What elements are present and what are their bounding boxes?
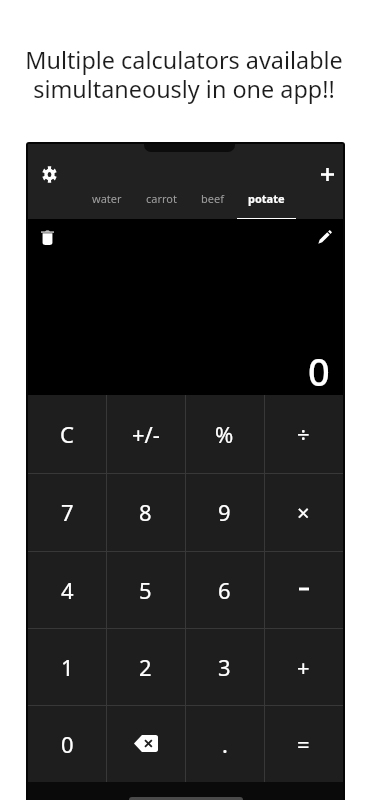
button[interactable]: beef [190, 191, 235, 220]
staticText: × [297, 497, 310, 527]
staticText: 7 [61, 497, 74, 527]
staticText: 8 [139, 497, 152, 527]
button[interactable]: Settings [37, 162, 61, 186]
staticText: 1 [61, 652, 74, 682]
button[interactable]: water [81, 191, 133, 220]
button[interactable]: 0 [28, 705, 106, 782]
button[interactable]: ÷ [264, 395, 343, 473]
button[interactable]: 5 [106, 551, 185, 628]
button[interactable]: 9 [185, 473, 264, 551]
button[interactable]: Edit [313, 225, 337, 249]
button[interactable] [264, 551, 343, 628]
staticText: water [92, 191, 122, 206]
staticText: 3 [218, 652, 231, 682]
button[interactable]: 2 [106, 628, 185, 705]
button[interactable]: C [28, 395, 106, 473]
button[interactable]: + [264, 628, 343, 705]
button[interactable]: New calculator [315, 162, 339, 186]
staticText: ÷ [297, 419, 310, 449]
button[interactable] [106, 705, 185, 782]
staticText: 6 [218, 575, 231, 605]
staticText: potate [248, 191, 285, 206]
staticText: + [297, 652, 310, 682]
button[interactable]: 6 [185, 551, 264, 628]
staticText: % [215, 419, 234, 449]
staticText: C [60, 419, 74, 449]
button[interactable]: potate [237, 191, 296, 220]
staticText: 2 [139, 652, 152, 682]
staticText: Multiple calculators available simultane… [25, 44, 343, 105]
button[interactable]: × [264, 473, 343, 551]
button[interactable]: 7 [28, 473, 106, 551]
staticText: 9 [218, 497, 231, 527]
button[interactable]: . [185, 705, 264, 782]
staticText: = [297, 729, 310, 759]
button[interactable]: +/- [106, 395, 185, 473]
button[interactable]: 8 [106, 473, 185, 551]
staticText: carrot [146, 191, 177, 206]
staticText: beef [201, 191, 224, 206]
button[interactable]: 4 [28, 551, 106, 628]
staticText: 0 [61, 729, 74, 759]
button[interactable]: 3 [185, 628, 264, 705]
staticText: +/- [132, 419, 160, 449]
staticText: . [222, 729, 228, 759]
button[interactable]: % [185, 395, 264, 473]
button[interactable]: = [264, 705, 343, 782]
button[interactable]: carrot [135, 191, 188, 220]
staticText: 0 [308, 345, 330, 397]
staticText: 5 [139, 575, 152, 605]
button[interactable]: 1 [28, 628, 106, 705]
staticText: 4 [61, 575, 74, 605]
button[interactable]: Clear history [35, 225, 59, 249]
